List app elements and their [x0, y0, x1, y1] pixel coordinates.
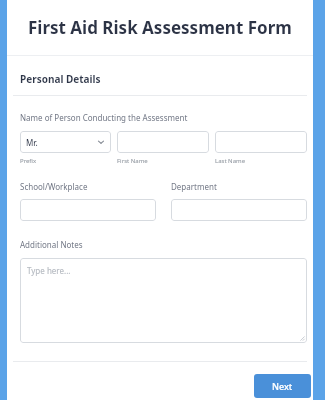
- staticText: Additional Notes: [20, 239, 83, 250]
- staticText: Department: [171, 181, 217, 192]
- staticText: Last Name: [215, 157, 246, 165]
- button[interactable]: Mr.: [20, 131, 111, 153]
- other: Open prefix dropdown: [97, 138, 105, 146]
- button[interactable]: Next: [254, 374, 311, 398]
- staticText: Personal Details: [20, 72, 101, 86]
- staticText: Prefix: [20, 157, 37, 165]
- button[interactable]: [117, 131, 209, 153]
- staticText: Next: [272, 380, 293, 392]
- button[interactable]: [20, 199, 156, 221]
- staticText: First Name: [117, 157, 148, 165]
- button[interactable]: [171, 199, 307, 221]
- staticText: Mr.: [26, 137, 97, 148]
- staticText: Name of Person Conducting the Assessment: [20, 112, 188, 123]
- staticText: School/Workplace: [20, 181, 88, 192]
- button[interactable]: Type here...: [20, 258, 307, 343]
- staticText: First Aid Risk Assessment Form: [28, 16, 292, 39]
- button[interactable]: [215, 131, 307, 153]
- staticText: Type here...: [27, 265, 71, 276]
